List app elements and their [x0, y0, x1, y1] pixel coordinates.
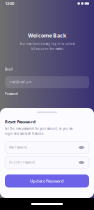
staticText: follow us on the market: [30, 47, 63, 51]
staticText: Update Password: [30, 178, 64, 184]
staticText: Your new item is ready, log in to unlock: [19, 42, 74, 46]
staticText: Welcome Back: [28, 32, 66, 39]
staticText: Set the new password for your account, s…: [5, 127, 73, 130]
staticText: email@email.com: [9, 80, 31, 84]
staticText: 12:00: [5, 1, 14, 6]
staticText: login and access all features.: [5, 132, 44, 135]
button[interactable]: Re-enter Password: [5, 156, 89, 168]
staticText: Email: [5, 68, 13, 71]
staticText: Password: [5, 92, 18, 96]
staticText: Re-enter Password: [9, 161, 35, 164]
button[interactable]: New Password: [5, 141, 89, 153]
staticText: Reset Password: [5, 119, 36, 124]
button[interactable]: Update Password: [5, 174, 89, 187]
staticText: New Password: [9, 146, 27, 149]
